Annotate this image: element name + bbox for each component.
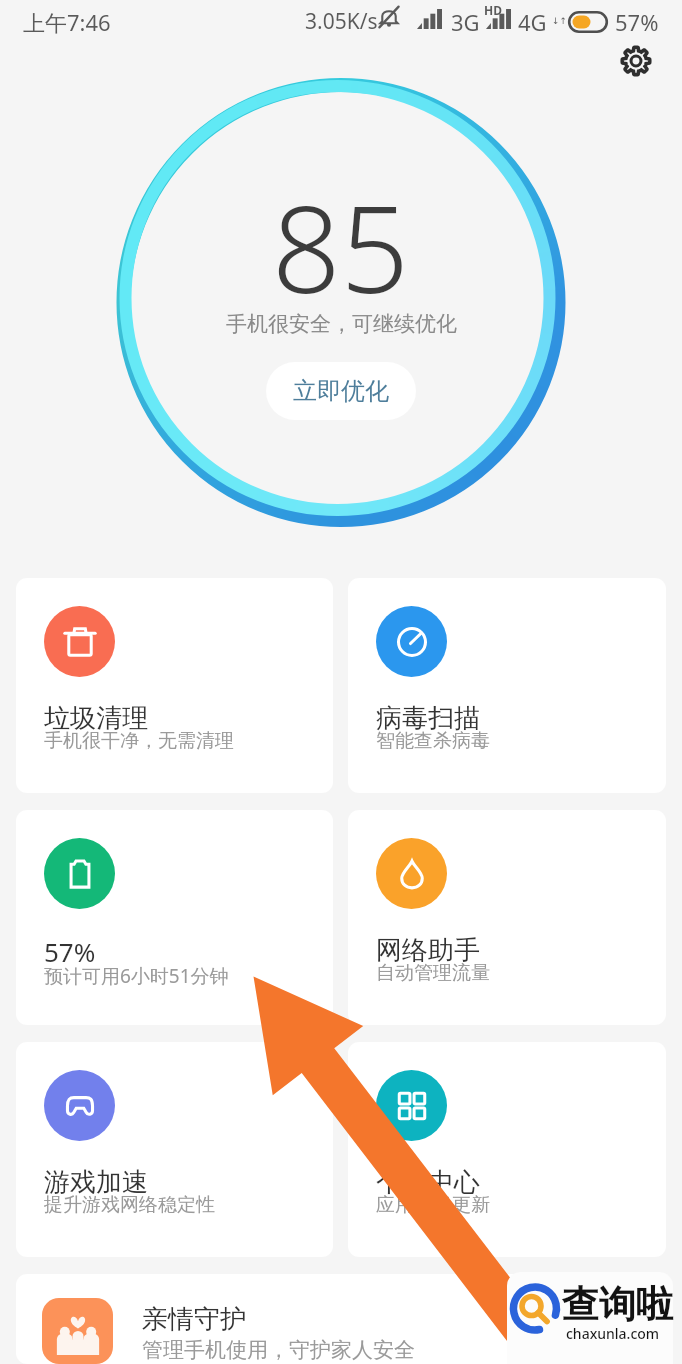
- staticText: 查询啦: [562, 1281, 673, 1328]
- staticText: 病毒扫描: [376, 702, 480, 735]
- button[interactable]: 亲情守护: [16, 1274, 666, 1364]
- staticText: HD: [484, 2, 502, 18]
- staticText: 57%: [44, 934, 96, 969]
- staticText: ↓↑: [552, 16, 568, 26]
- staticText: 57%: [615, 7, 659, 37]
- button[interactable]: 游戏加速: [16, 1042, 333, 1257]
- staticText: 3.05K/s: [305, 7, 378, 36]
- staticText: 上午7:46: [23, 7, 111, 37]
- staticText: 垃圾清理: [44, 702, 148, 735]
- button[interactable]: 立即优化: [266, 362, 416, 420]
- button[interactable]: 57%: [16, 810, 333, 1025]
- staticText: 预计可用6小时51分钟: [44, 963, 229, 989]
- button[interactable]: Settings: [618, 46, 654, 76]
- staticText: 亲情守护: [142, 1303, 246, 1336]
- staticText: 立即优化: [293, 376, 389, 406]
- staticText: 85: [272, 165, 410, 328]
- staticText: 手机很干净，无需清理: [44, 729, 234, 753]
- staticText: 4G: [518, 7, 547, 37]
- staticText: 手机很安全，可继续优化: [226, 311, 457, 337]
- button[interactable]: 病毒扫描: [348, 578, 666, 793]
- staticText: 游戏加速: [44, 1166, 148, 1199]
- staticText: 提升游戏网络稳定性: [44, 1193, 215, 1217]
- button[interactable]: 个人中心: [348, 1042, 666, 1257]
- staticText: 管理手机使用，守护家人安全: [142, 1337, 415, 1363]
- staticText: chaxunla.com: [566, 1324, 660, 1343]
- staticText: 网络助手: [376, 934, 480, 967]
- staticText: 应用市场更新: [376, 1193, 490, 1217]
- button[interactable]: 网络助手: [348, 810, 666, 1025]
- staticText: 自动管理流量: [376, 961, 490, 985]
- staticText: 个人中心: [376, 1166, 480, 1199]
- staticText: 智能查杀病毒: [376, 729, 490, 753]
- staticText: 3G: [451, 7, 480, 37]
- button[interactable]: 垃圾清理: [16, 578, 333, 793]
